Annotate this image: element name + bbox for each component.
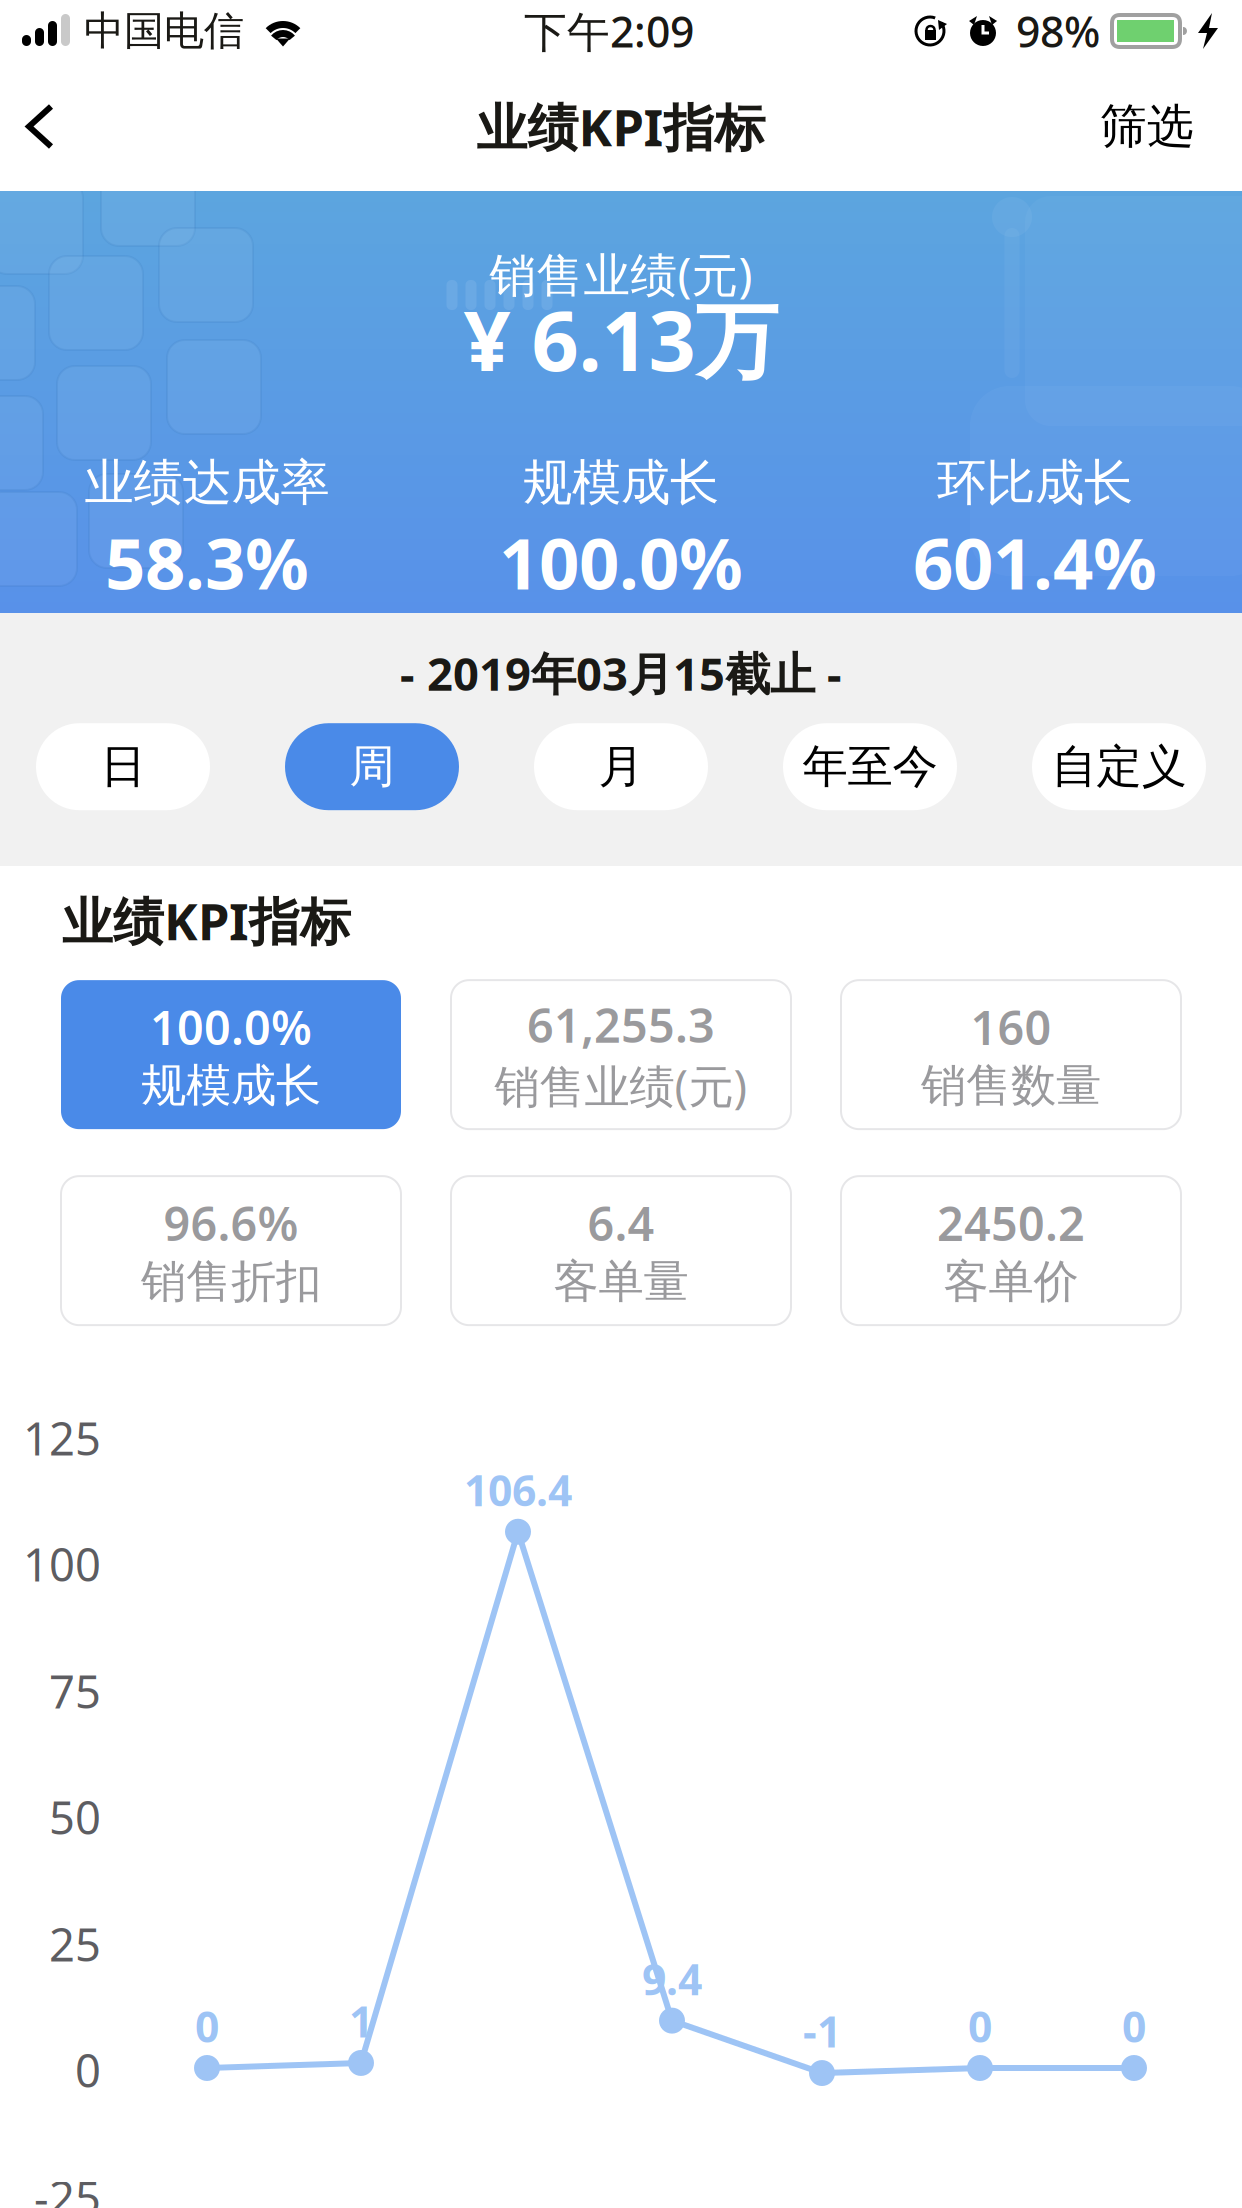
staticText: 自定义 bbox=[1051, 739, 1186, 795]
button[interactable]: 自定义 bbox=[1032, 723, 1206, 810]
staticText: 销售折扣 bbox=[141, 1254, 321, 1309]
staticText: 规模成长 bbox=[523, 453, 719, 513]
staticText: 客单量 bbox=[553, 1254, 688, 1309]
button[interactable]: 周 bbox=[285, 723, 459, 810]
staticText: 环比成长 bbox=[937, 453, 1133, 513]
staticText: 月 bbox=[598, 739, 643, 795]
button[interactable]: 筛选 bbox=[1074, 62, 1242, 191]
button[interactable]: 100.0% bbox=[61, 980, 401, 1129]
staticText: 2450.2 bbox=[937, 1192, 1085, 1254]
staticText: 业绩KPI指标 bbox=[62, 887, 351, 954]
staticText: 25 bbox=[49, 1914, 101, 1974]
button[interactable]: 日 bbox=[36, 723, 210, 810]
staticText: 58.3% bbox=[105, 515, 309, 609]
staticText: 年至今 bbox=[802, 739, 937, 795]
staticText: 100 bbox=[23, 1534, 101, 1594]
staticText: 业绩KPI指标 bbox=[476, 93, 765, 160]
staticText: 客单价 bbox=[943, 1254, 1078, 1309]
staticText: 销售数量 bbox=[921, 1058, 1101, 1113]
staticText: 61,255.3 bbox=[527, 994, 715, 1056]
staticText: 75 bbox=[49, 1661, 101, 1721]
staticText: 96.6% bbox=[163, 1192, 298, 1254]
staticText: 销售业绩(元) bbox=[489, 243, 752, 305]
staticText: 0 bbox=[968, 1998, 992, 2054]
button[interactable]: 2450.2 bbox=[841, 1176, 1181, 1325]
staticText: 6.4 bbox=[587, 1192, 654, 1254]
staticText: -25 bbox=[34, 2167, 101, 2208]
button[interactable]: 160 bbox=[841, 980, 1181, 1129]
staticText: 中国电信 bbox=[84, 6, 244, 55]
staticText: 日 bbox=[100, 739, 145, 795]
button[interactable]: 6.4 bbox=[451, 1176, 791, 1325]
staticText: 周 bbox=[349, 739, 394, 795]
staticText: 106.4 bbox=[464, 1461, 572, 1518]
button[interactable]: 月 bbox=[534, 723, 708, 810]
button[interactable]: 96.6% bbox=[61, 1176, 401, 1325]
button[interactable]: Back bbox=[0, 62, 80, 191]
staticText: 1 bbox=[349, 1993, 373, 2049]
staticText: 业绩达成率 bbox=[84, 453, 329, 513]
staticText: 0 bbox=[75, 2040, 101, 2100]
staticText: ¥ 6.13万 bbox=[463, 284, 778, 394]
staticText: 125 bbox=[23, 1408, 101, 1468]
button[interactable]: 61,255.3 bbox=[451, 980, 791, 1129]
staticText: 0 bbox=[195, 1998, 219, 2054]
staticText: 50 bbox=[49, 1787, 101, 1847]
staticText: 规模成长 bbox=[141, 1058, 321, 1113]
staticText: 160 bbox=[970, 996, 1051, 1058]
button[interactable]: 年至今 bbox=[783, 723, 957, 810]
staticText: 9.4 bbox=[642, 1950, 702, 2007]
staticText: 0 bbox=[1122, 1998, 1146, 2054]
staticText: -1 bbox=[803, 2003, 841, 2059]
staticText: 下午2:09 bbox=[524, 3, 694, 59]
staticText: 98% bbox=[1016, 3, 1100, 59]
staticText: 筛选 bbox=[1100, 98, 1194, 155]
staticText: 601.4% bbox=[913, 515, 1157, 609]
staticText: 销售业绩(元) bbox=[494, 1055, 747, 1116]
staticText: 100.0% bbox=[499, 515, 743, 609]
staticText: - 2019年03月15截止 - bbox=[400, 643, 842, 703]
staticText: 100.0% bbox=[150, 996, 312, 1058]
